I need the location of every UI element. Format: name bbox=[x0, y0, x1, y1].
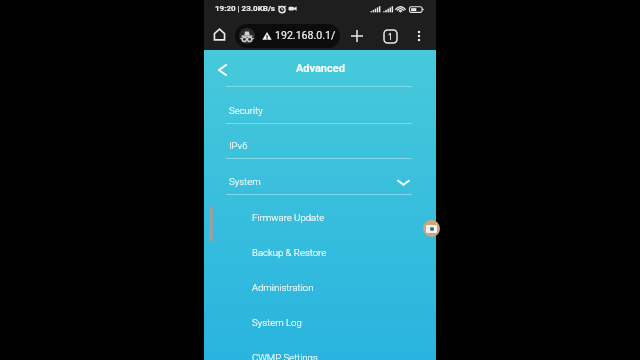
button[interactable]: System bbox=[218, 166, 422, 198]
button[interactable]: IPv6 bbox=[218, 130, 422, 162]
button[interactable]: Home bbox=[209, 24, 230, 45]
staticText: 1 bbox=[388, 31, 393, 42]
staticText: CWMP Settings bbox=[252, 352, 318, 360]
staticText: 192.168.0.1/ bbox=[275, 29, 336, 41]
button[interactable]: Picture in picture bbox=[423, 220, 440, 237]
button[interactable]: Back bbox=[212, 60, 232, 80]
button[interactable]: Backup & Restore bbox=[244, 237, 422, 269]
button[interactable]: 192.168.0.1/ bbox=[235, 24, 340, 48]
staticText: System bbox=[229, 176, 261, 187]
staticText: System Log bbox=[252, 317, 302, 328]
staticText: Firmware Update bbox=[252, 212, 325, 223]
button[interactable]: Tabs bbox=[378, 24, 402, 48]
button[interactable]: CWMP Settings bbox=[244, 342, 422, 360]
button[interactable]: More options bbox=[408, 25, 430, 47]
staticText: 19:20 | 23.0KB/s bbox=[215, 4, 275, 13]
staticText: IPv6 bbox=[229, 140, 248, 151]
staticText: Security bbox=[229, 105, 263, 116]
button[interactable]: New tab bbox=[345, 24, 369, 48]
button[interactable]: Security bbox=[218, 95, 422, 127]
button[interactable]: Administration bbox=[244, 272, 422, 304]
staticText: Administration bbox=[252, 282, 314, 293]
button[interactable]: Firmware Update bbox=[244, 202, 422, 234]
staticText: Backup & Restore bbox=[252, 247, 327, 258]
staticText: Advanced bbox=[296, 62, 345, 75]
button[interactable]: System Log bbox=[244, 307, 422, 339]
